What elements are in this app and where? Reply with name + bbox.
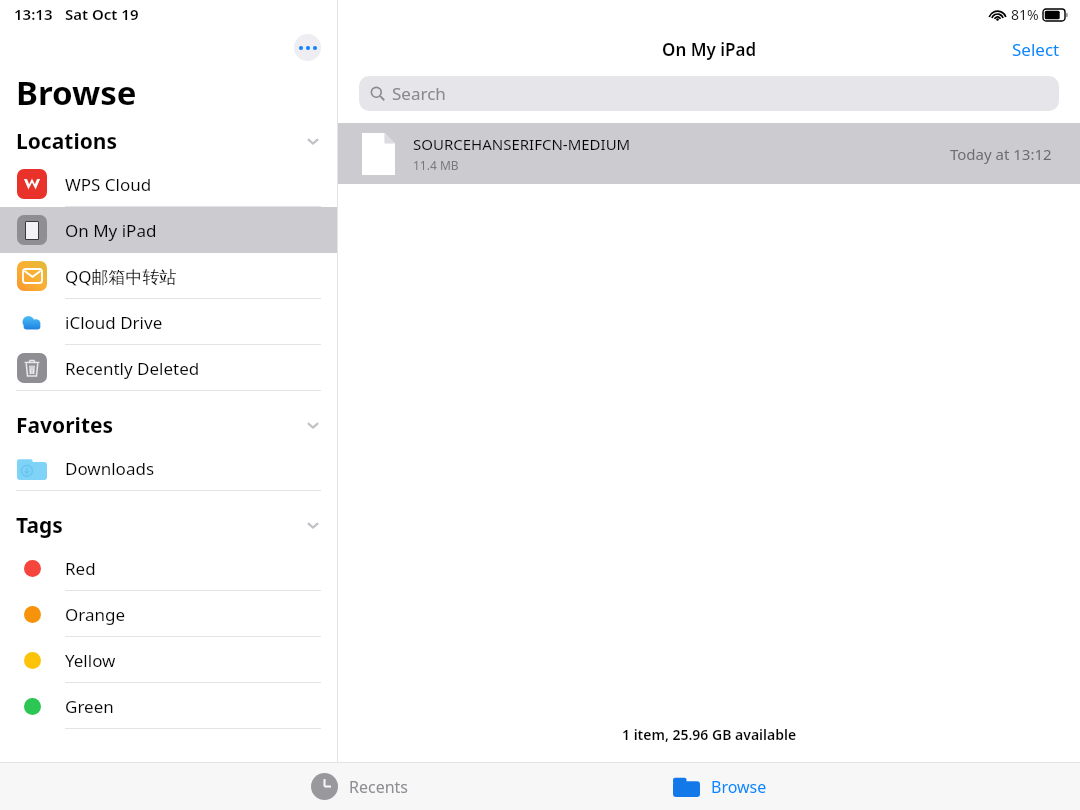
- button[interactable]: Red: [0, 545, 337, 591]
- button[interactable]: WPS Cloud: [0, 161, 337, 207]
- staticText: On My iPad: [65, 219, 157, 242]
- button[interactable]: More options: [294, 34, 321, 61]
- staticText: 81%: [1011, 5, 1039, 24]
- staticText: 11.4 MB: [413, 157, 459, 173]
- staticText: 13:13: [14, 4, 53, 24]
- staticText: Select: [1012, 38, 1060, 61]
- button[interactable]: Select: [992, 30, 1080, 69]
- staticText: Green: [65, 695, 114, 718]
- button[interactable]: Tags: [0, 505, 337, 545]
- button[interactable]: SOURCEHANSERIFCN-MEDIUM: [338, 123, 1080, 184]
- staticText: 1 item, 25.96 GB available: [622, 725, 797, 744]
- button[interactable]: Downloads: [0, 445, 337, 491]
- button[interactable]: Favorites: [0, 405, 337, 445]
- button[interactable]: Orange: [0, 591, 337, 637]
- staticText: Today at 13:12: [950, 144, 1052, 164]
- button[interactable]: Search: [359, 76, 1059, 111]
- button[interactable]: Locations: [0, 121, 337, 161]
- staticText: Orange: [65, 603, 126, 626]
- staticText: Browse: [16, 70, 137, 115]
- staticText: Recently Deleted: [65, 357, 200, 380]
- staticText: Red: [65, 557, 96, 580]
- button[interactable]: Browse: [540, 763, 900, 810]
- staticText: Yellow: [65, 649, 116, 672]
- staticText: SOURCEHANSERIFCN-MEDIUM: [413, 134, 631, 154]
- staticText: Recents: [349, 776, 409, 798]
- button[interactable]: QQ邮箱中转站: [0, 253, 337, 299]
- staticText: On My iPad: [662, 38, 757, 61]
- button[interactable]: Yellow: [0, 637, 337, 683]
- staticText: Browse: [711, 776, 767, 798]
- staticText: Tags: [16, 511, 63, 540]
- button[interactable]: On My iPad: [0, 207, 337, 253]
- staticText: Search: [392, 82, 446, 105]
- button[interactable]: Green: [0, 683, 337, 729]
- staticText: Sat Oct 19: [65, 4, 139, 24]
- staticText: Favorites: [16, 411, 114, 440]
- staticText: Downloads: [65, 457, 155, 480]
- button[interactable]: iCloud Drive: [0, 299, 337, 345]
- staticText: Locations: [16, 127, 117, 156]
- button[interactable]: Recents: [180, 763, 540, 810]
- staticText: WPS Cloud: [65, 173, 152, 196]
- staticText: iCloud Drive: [65, 311, 163, 334]
- button[interactable]: Recently Deleted: [0, 345, 337, 391]
- staticText: QQ邮箱中转站: [65, 265, 177, 288]
